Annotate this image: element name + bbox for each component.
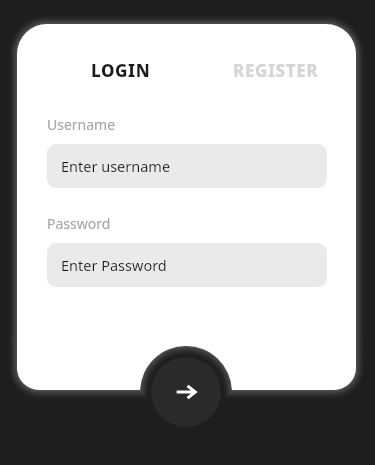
button[interactable]: Enter Password — [47, 243, 327, 287]
button[interactable]: Enter username — [47, 144, 327, 188]
button[interactable]: LOGIN — [89, 56, 153, 85]
staticText: Username — [47, 115, 116, 134]
button[interactable]: Submit login — [151, 357, 221, 427]
staticText: REGISTER — [233, 59, 319, 82]
staticText: Enter username — [61, 156, 171, 176]
staticText: Password — [47, 214, 111, 233]
staticText: LOGIN — [91, 59, 151, 82]
button[interactable]: REGISTER — [231, 56, 321, 85]
staticText: Enter Password — [61, 255, 167, 275]
